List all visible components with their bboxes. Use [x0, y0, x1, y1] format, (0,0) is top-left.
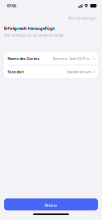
button[interactable]: Weiter: [4, 198, 98, 210]
staticText: Alles überspringen: [68, 17, 96, 20]
staticText: Erfolgreich hinzugefügt: [4, 25, 55, 31]
staticText: Kamera - hub OS Pro…: [52, 56, 91, 61]
staticText: Bitte bestätigen Sie die Details des Ger…: [4, 34, 63, 37]
staticText: Name des Geräts: [7, 56, 39, 61]
staticText: 07:56: [7, 3, 16, 8]
staticText: Weiter: [44, 202, 57, 208]
button[interactable]: Standort, Standardraum: [4, 65, 98, 78]
staticText: Standardraum: [66, 69, 91, 74]
button[interactable]: Alles überspringen: [67, 14, 98, 21]
staticText: Standort: [7, 69, 24, 74]
button[interactable]: Name des Geräts, Kamera - hub OS Pro: [4, 52, 98, 65]
